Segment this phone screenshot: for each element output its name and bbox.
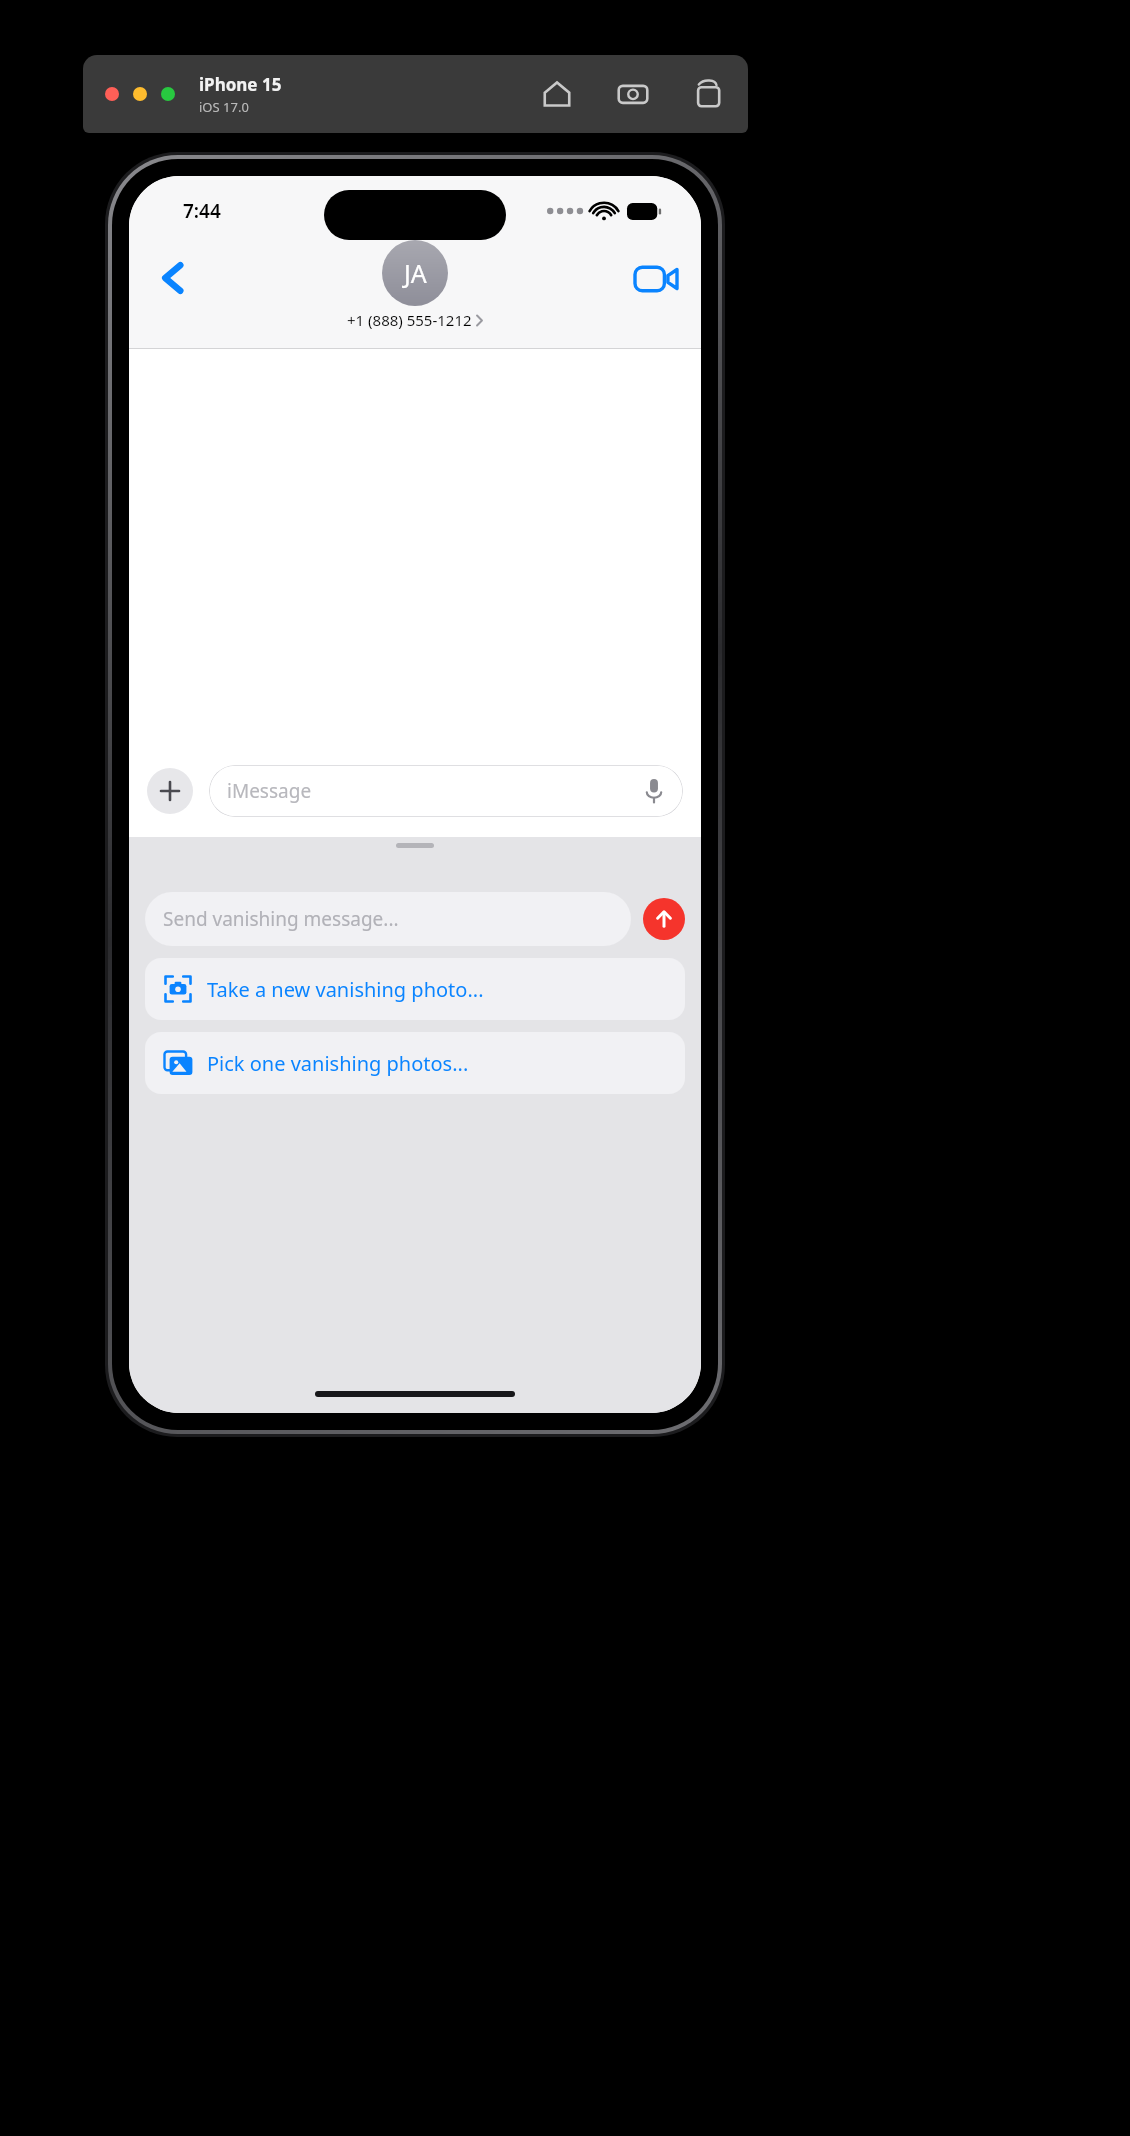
button[interactable]: Home (540, 77, 574, 111)
button[interactable]: Screenshot (616, 77, 650, 111)
staticText: 7:44 (183, 198, 221, 224)
button[interactable]: Take a new vanishing photo... (145, 958, 685, 1020)
button[interactable]: Back (145, 250, 201, 306)
staticText: iOS 17.0 (199, 98, 249, 116)
staticText: Send vanishing message... (163, 906, 399, 932)
staticText: iMessage (227, 778, 312, 804)
button[interactable]: Send vanishing message... (145, 892, 631, 946)
staticText: iPhone 15 (199, 73, 282, 96)
button[interactable]: Pick one vanishing photos... (145, 1032, 685, 1094)
button[interactable]: FaceTime video call (629, 252, 683, 306)
button[interactable]: Rotate (692, 77, 726, 111)
button[interactable]: Window control (105, 87, 119, 101)
button[interactable]: JA (347, 240, 483, 330)
staticText: Pick one vanishing photos... (207, 1050, 469, 1077)
staticText: Take a new vanishing photo... (207, 976, 484, 1003)
staticText: +1 (888) 555-1212 (347, 310, 472, 330)
button[interactable]: iMessage (209, 765, 683, 817)
staticText: JA (404, 256, 427, 290)
button[interactable]: Add attachment (147, 768, 193, 814)
button[interactable]: Dictate (639, 776, 669, 806)
button[interactable]: Send (643, 898, 685, 940)
button[interactable]: Window control (133, 87, 147, 101)
button[interactable]: Window control (161, 87, 175, 101)
